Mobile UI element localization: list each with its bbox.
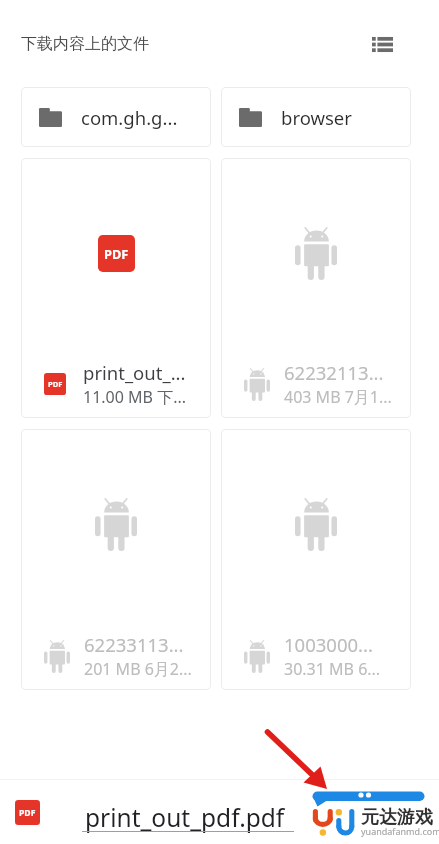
staticText: PDF (104, 245, 129, 262)
staticText: browser (281, 105, 352, 130)
staticText: 下载内容上的文件 (21, 34, 149, 54)
staticText: 62233113... (84, 632, 184, 657)
staticText: print_out_... (83, 360, 186, 385)
staticText: 30.31 MB 6... (284, 658, 381, 680)
staticText: com.gh.g... (81, 105, 178, 130)
staticText: print_out_pdf.pdf (85, 801, 285, 834)
button[interactable]: 62233113... (21, 429, 211, 690)
staticText: 403 MB 7月1... (284, 386, 392, 408)
staticText: 62232113... (284, 360, 384, 385)
staticText: yuandafanmd.com (361, 825, 439, 837)
staticText: 201 MB 6月2... (84, 658, 192, 680)
staticText: PDF (19, 807, 36, 819)
button[interactable]: browser (221, 87, 411, 147)
button[interactable]: PDF (21, 158, 211, 418)
staticText: 元达游戏 (361, 806, 433, 829)
button[interactable]: PDF (0, 780, 439, 844)
staticText: PDF (48, 379, 63, 389)
button[interactable]: 62232113... (221, 158, 411, 418)
button[interactable]: 1003000... (221, 429, 411, 690)
button[interactable]: com.gh.g... (21, 87, 211, 147)
staticText: 1003000... (284, 632, 373, 657)
button[interactable]: List view (364, 26, 400, 62)
staticText: 11.00 MB 下... (83, 386, 186, 408)
